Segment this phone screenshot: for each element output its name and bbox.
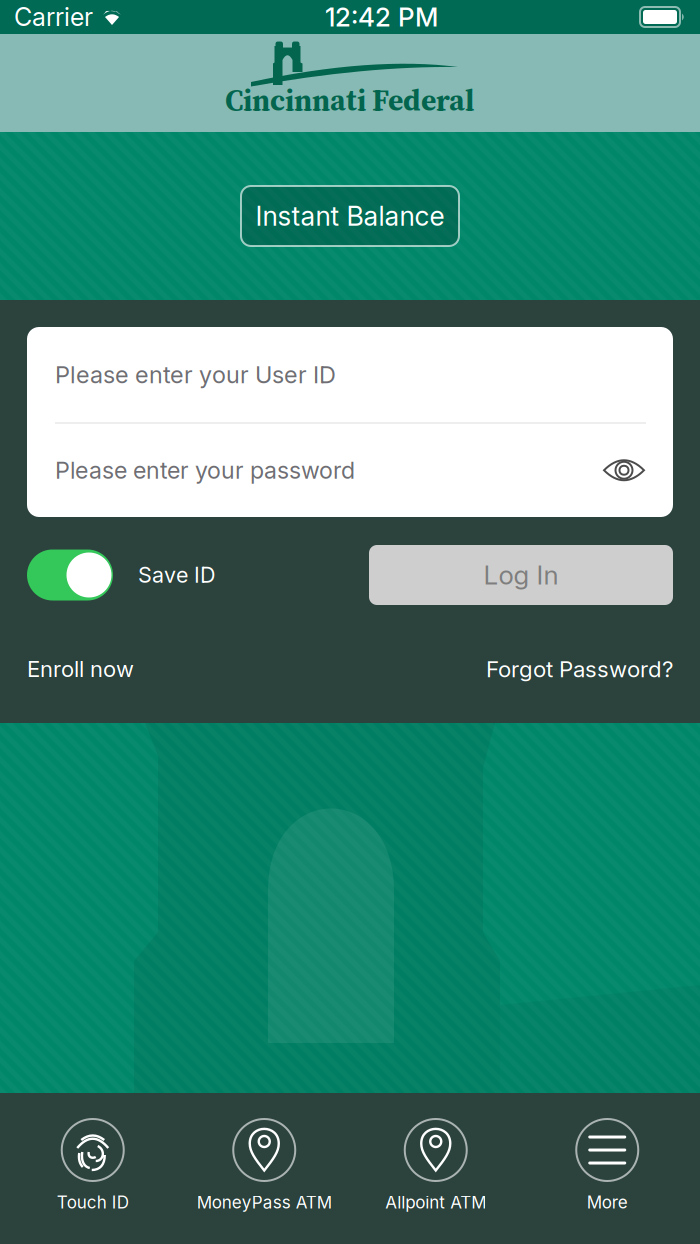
staticText: More: [587, 1192, 628, 1213]
staticText: Allpoint ATM: [385, 1192, 486, 1213]
button[interactable]: Touch ID: [7, 1093, 178, 1244]
staticText: Log In: [483, 559, 558, 591]
staticText: Please enter your User ID: [55, 360, 336, 389]
staticText: Instant Balance: [255, 200, 444, 232]
button[interactable]: Save ID: [27, 545, 216, 605]
staticText: Save ID: [138, 562, 216, 588]
staticText: Please enter your password: [55, 456, 355, 484]
button[interactable]: Enroll now: [27, 649, 134, 689]
staticText: 12:42 PM: [325, 1, 438, 33]
button[interactable]: Instant Balance: [241, 186, 459, 246]
button[interactable]: Allpoint ATM: [350, 1093, 521, 1244]
button[interactable]: Forgot Password?: [486, 649, 673, 689]
button[interactable]: Please enter your password: [27, 424, 673, 517]
staticText: MoneyPass ATM: [197, 1192, 332, 1213]
staticText: Carrier: [14, 2, 93, 32]
staticText: Touch ID: [57, 1192, 129, 1213]
button[interactable]: MoneyPass ATM: [178, 1093, 350, 1244]
button[interactable]: Log In: [369, 545, 673, 605]
staticText: Enroll now: [27, 656, 134, 682]
staticText: Forgot Password?: [486, 655, 673, 682]
button[interactable]: More: [521, 1093, 693, 1244]
staticText: Cincinnati Federal: [225, 80, 475, 120]
button[interactable]: Please enter your User ID: [27, 327, 673, 422]
